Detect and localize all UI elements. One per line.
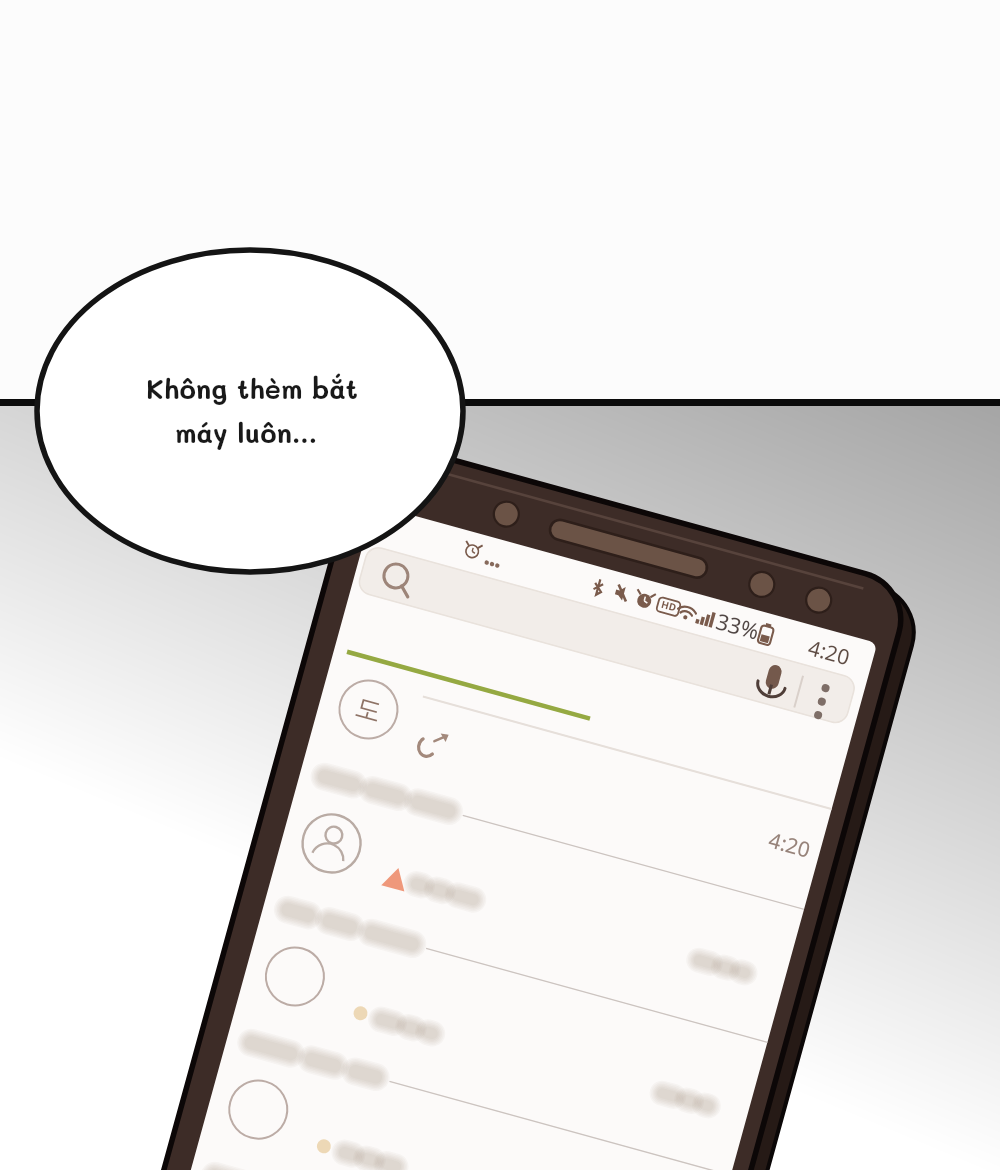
button[interactable]: Comic panel: phone on a table with a spe… (0, 0, 1000, 1170)
